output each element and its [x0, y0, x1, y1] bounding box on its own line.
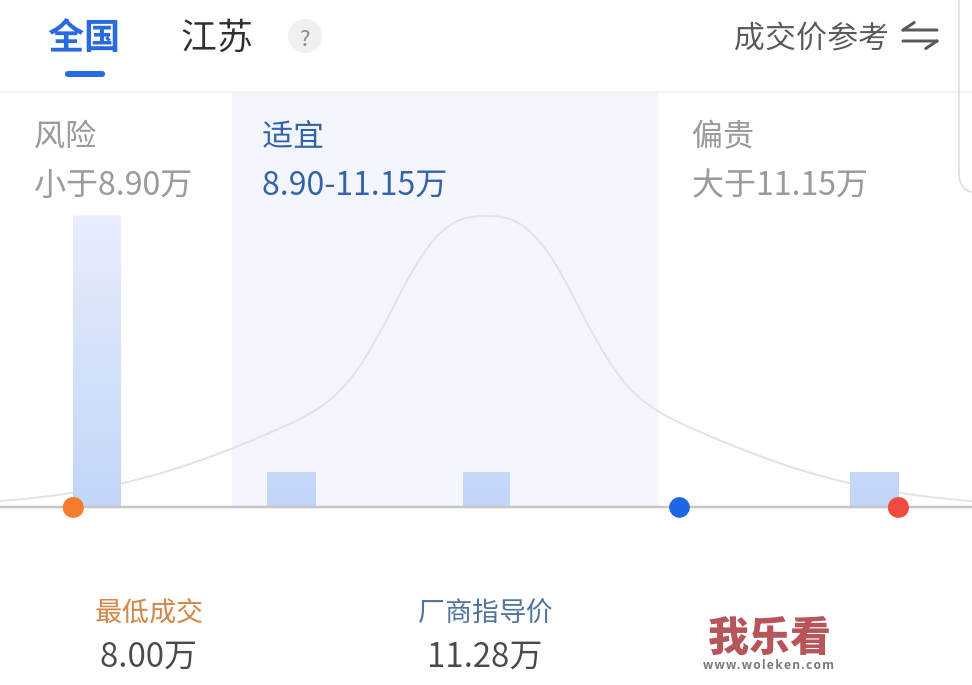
staticText: 成交价参考 [734, 12, 889, 57]
staticText: 最低成交 [95, 590, 203, 629]
button[interactable]: 最低成交 [53, 590, 245, 677]
staticText: 8.90-11.15万 [262, 158, 448, 204]
button[interactable]: 成交价参考 [734, 12, 937, 57]
staticText: 11.28万 [427, 629, 543, 677]
button[interactable]: Help [288, 19, 322, 53]
staticText: 偏贵 [692, 110, 754, 155]
staticText: ? [300, 20, 311, 52]
button[interactable]: 全国 [48, 7, 121, 77]
staticText: 我乐看 [708, 603, 831, 662]
staticText: 小于8.90万 [34, 158, 193, 204]
staticText: www.woleken.com [703, 656, 836, 672]
staticText: 适宜 [262, 110, 324, 155]
staticText: 江苏 [181, 7, 254, 59]
button[interactable]: 厂商指导价 [389, 590, 581, 677]
staticText: 全国 [48, 7, 121, 59]
staticText: 风险 [34, 110, 96, 155]
staticText: 8.00万 [100, 629, 198, 677]
staticText: 大于11.15万 [692, 158, 868, 204]
staticText: 厂商指导价 [418, 590, 553, 629]
button[interactable]: 江苏 [181, 7, 254, 59]
